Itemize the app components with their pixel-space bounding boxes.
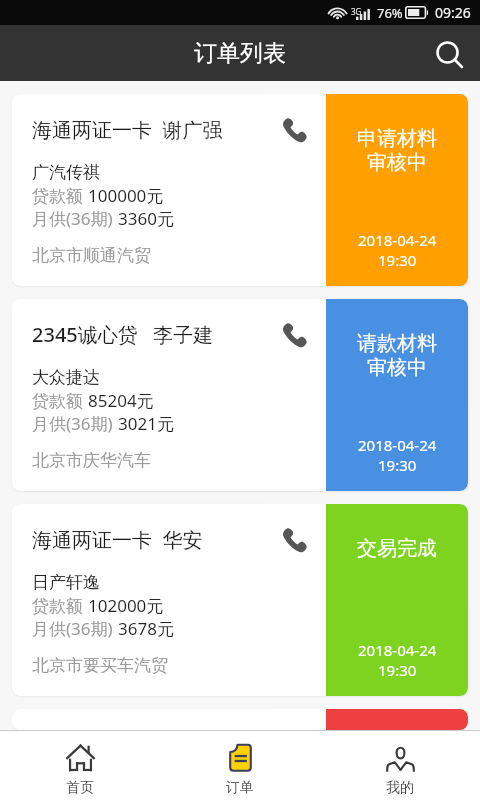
staticText: 3678元 [118,617,174,640]
staticText: 3G [351,6,362,17]
staticText: 北京市庆华汽车 [32,450,151,471]
staticText: 贷款额 [32,389,88,412]
staticText: 月供(36期) [32,617,118,640]
staticText: 海通两证一卡 华安 [32,526,203,553]
staticText: 首页 [66,779,94,797]
staticText: 广汽传祺 [32,162,100,183]
staticText: 2018-04-24 [358,640,437,660]
staticText: 3021元 [118,412,174,435]
staticText: 19:30 [378,250,417,270]
staticText: 北京市要买车汽贸 [32,655,168,676]
button[interactable]: Call [274,94,326,286]
staticText: 日产轩逸 [32,572,100,593]
staticText: 北京市顺通汽贸 [32,245,151,266]
button[interactable]: 海通两证一卡 赵明 [12,709,468,730]
staticText: 2018-04-24 [358,435,437,455]
staticText: 海通两证一卡 谢广强 [32,116,223,143]
button[interactable]: Call [274,504,326,696]
staticText: 月供(36期) [32,412,118,435]
staticText: 09:26 [435,3,471,22]
button[interactable]: 2345诚心贷 李子建 [12,299,468,491]
staticText: 19:30 [378,455,417,475]
staticText: 2345诚心贷 李子建 [32,321,214,348]
button[interactable]: 订单 [160,734,320,797]
button[interactable]: Call [274,299,326,491]
staticText: 大众捷达 [32,367,100,388]
staticText: 申请材料 审核中 [357,126,437,175]
staticText: 我的 [386,779,414,797]
button[interactable]: 首页 [0,734,160,797]
button[interactable]: Search [427,32,473,78]
staticText: 3360元 [118,207,174,230]
staticText: 交易完成 [357,536,437,561]
staticText: 76% [377,4,403,22]
button[interactable]: 我的 [320,734,480,797]
staticText: 订单 [226,779,254,797]
staticText: 100000元 [88,184,164,207]
staticText: 订单列表 [194,39,286,68]
staticText: 月供(36期) [32,207,118,230]
button[interactable]: 海通两证一卡 华安 [12,504,468,696]
staticText: 102000元 [88,594,164,617]
button[interactable]: 海通两证一卡 谢广强 [12,94,468,286]
staticText: 85204元 [88,389,154,412]
staticText: 贷款额 [32,184,88,207]
staticText: 2018-04-24 [358,230,437,250]
staticText: 请款材料 审核中 [357,331,437,380]
staticText: 19:30 [378,660,417,680]
staticText: 贷款额 [32,594,88,617]
